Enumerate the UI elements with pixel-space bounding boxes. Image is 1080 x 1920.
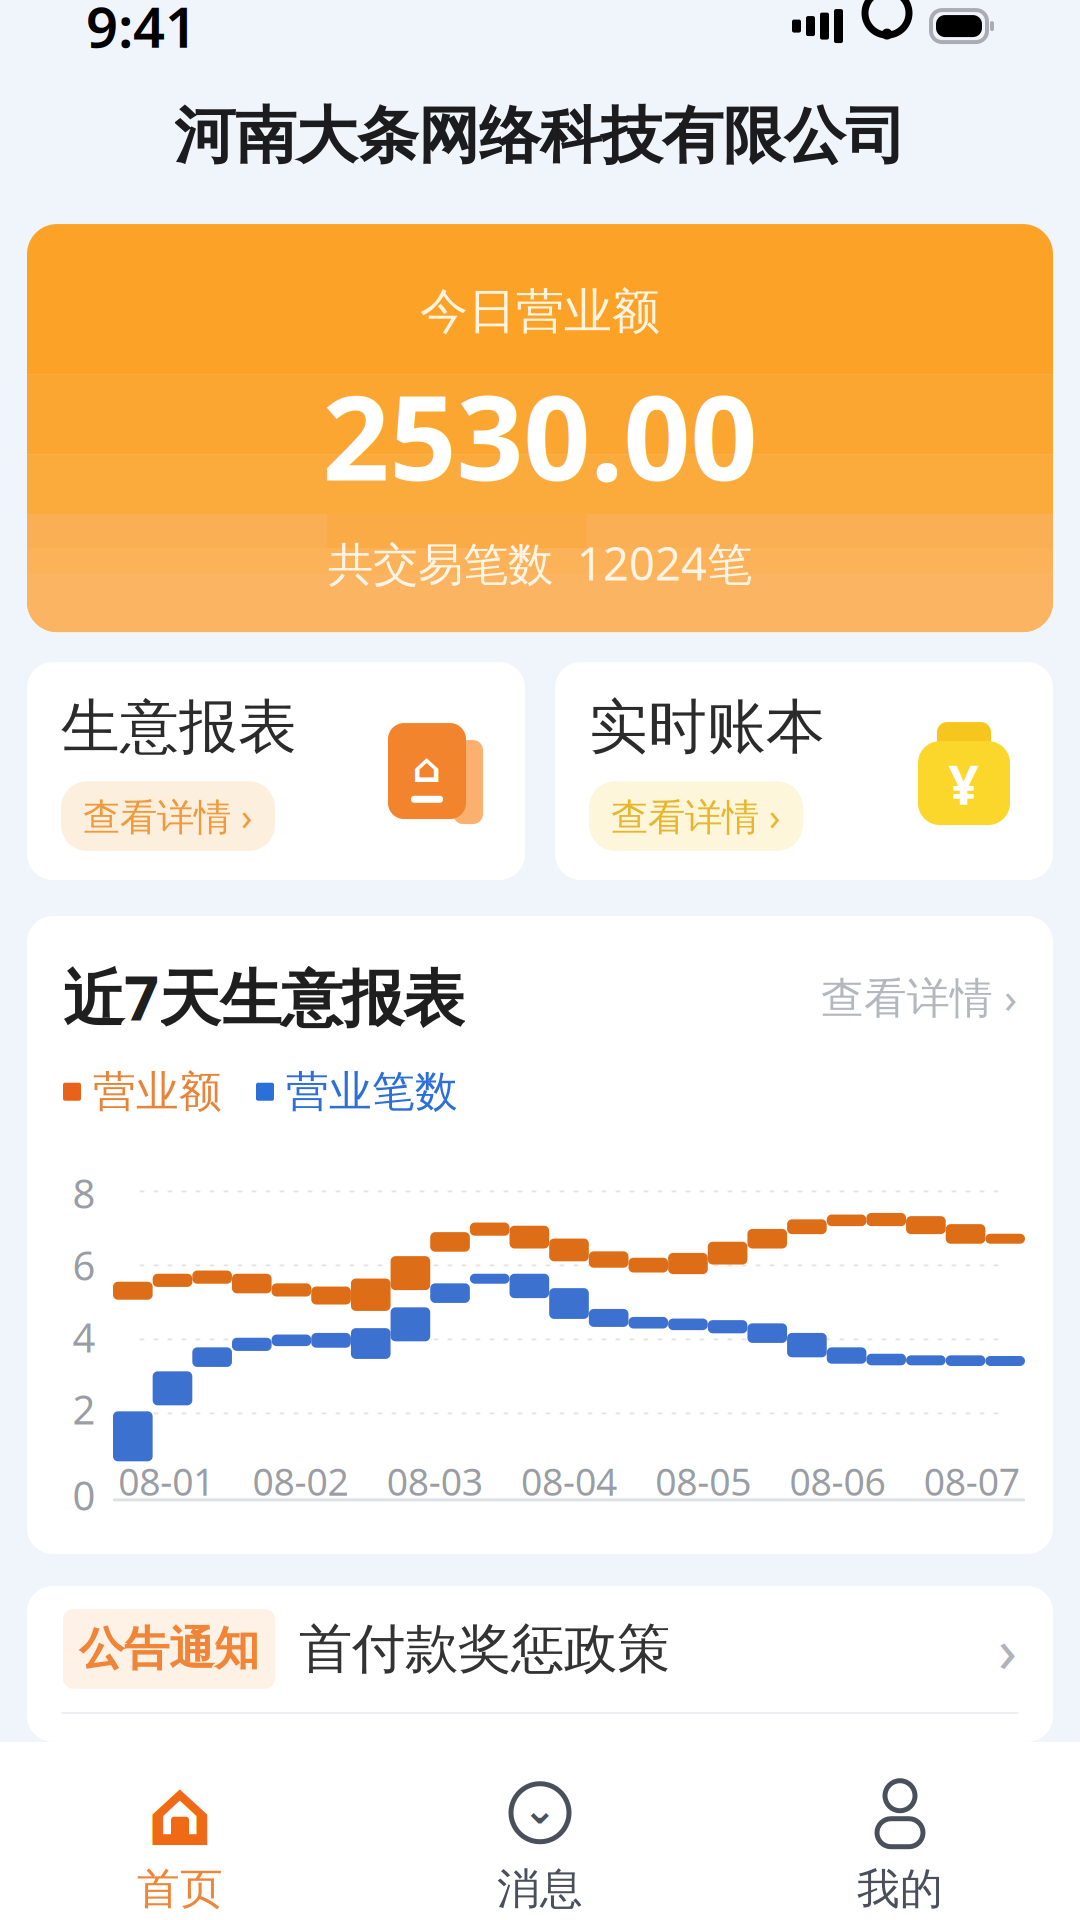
button[interactable]: 今日营业额 xyxy=(27,224,1053,632)
staticText: ⌂ xyxy=(412,745,441,791)
staticText: 今日营业额 xyxy=(420,282,660,341)
staticText: › xyxy=(998,1608,1017,1690)
staticText: 公告通知 xyxy=(79,1621,259,1677)
staticText: 4 xyxy=(72,1310,95,1363)
staticText: 2 xyxy=(72,1382,95,1435)
staticText: 营业额 xyxy=(93,1065,222,1118)
staticText: 生意报表 xyxy=(61,691,297,763)
staticText: ⌄ xyxy=(523,1787,557,1832)
button[interactable]: 公告通知 xyxy=(27,1586,1053,1742)
staticText: 查看详情 › xyxy=(611,791,781,841)
staticText: 08-05 xyxy=(655,1456,751,1506)
staticText: 9:41 xyxy=(86,0,197,63)
staticText: 河南大条网络科技有限公司 xyxy=(174,98,906,174)
staticText: 近7天生意报表 xyxy=(63,956,464,1037)
staticText: ¥ xyxy=(948,749,979,819)
staticText: 6 xyxy=(72,1238,95,1291)
staticText: 首页 xyxy=(137,1863,223,1915)
button[interactable]: ⌂ xyxy=(0,1752,360,1920)
staticText: 查看详情 › xyxy=(83,791,253,841)
staticText: 实时账本 xyxy=(589,691,825,763)
button[interactable]: 实时账本 xyxy=(555,662,1053,880)
staticText: 08-03 xyxy=(387,1456,483,1506)
staticText: 8 xyxy=(72,1166,95,1219)
staticText: 共交易笔数 12024笔 xyxy=(328,533,752,593)
staticText: 查看详情 › xyxy=(821,968,1017,1025)
staticText: 消息 xyxy=(497,1863,583,1915)
staticText: 我的 xyxy=(857,1863,943,1915)
button[interactable]: 生意报表 xyxy=(27,662,525,880)
staticText: 营业笔数 xyxy=(286,1065,458,1118)
staticText: 08-01 xyxy=(118,1456,214,1506)
staticText: ⌂ xyxy=(146,1760,213,1866)
staticText: 08-06 xyxy=(790,1456,886,1506)
button[interactable]: 我的 xyxy=(720,1752,1080,1920)
staticText: 08-04 xyxy=(521,1456,617,1506)
button[interactable]: 查看详情 › xyxy=(821,968,1017,1025)
button[interactable]: ⌄ xyxy=(360,1752,720,1920)
staticText: 08-07 xyxy=(924,1456,1020,1506)
staticText: 0 xyxy=(72,1468,95,1521)
staticText: 2530.00 xyxy=(322,357,757,513)
staticText: 08-02 xyxy=(252,1456,348,1506)
staticText: 首付款奖惩政策 xyxy=(299,1616,670,1682)
